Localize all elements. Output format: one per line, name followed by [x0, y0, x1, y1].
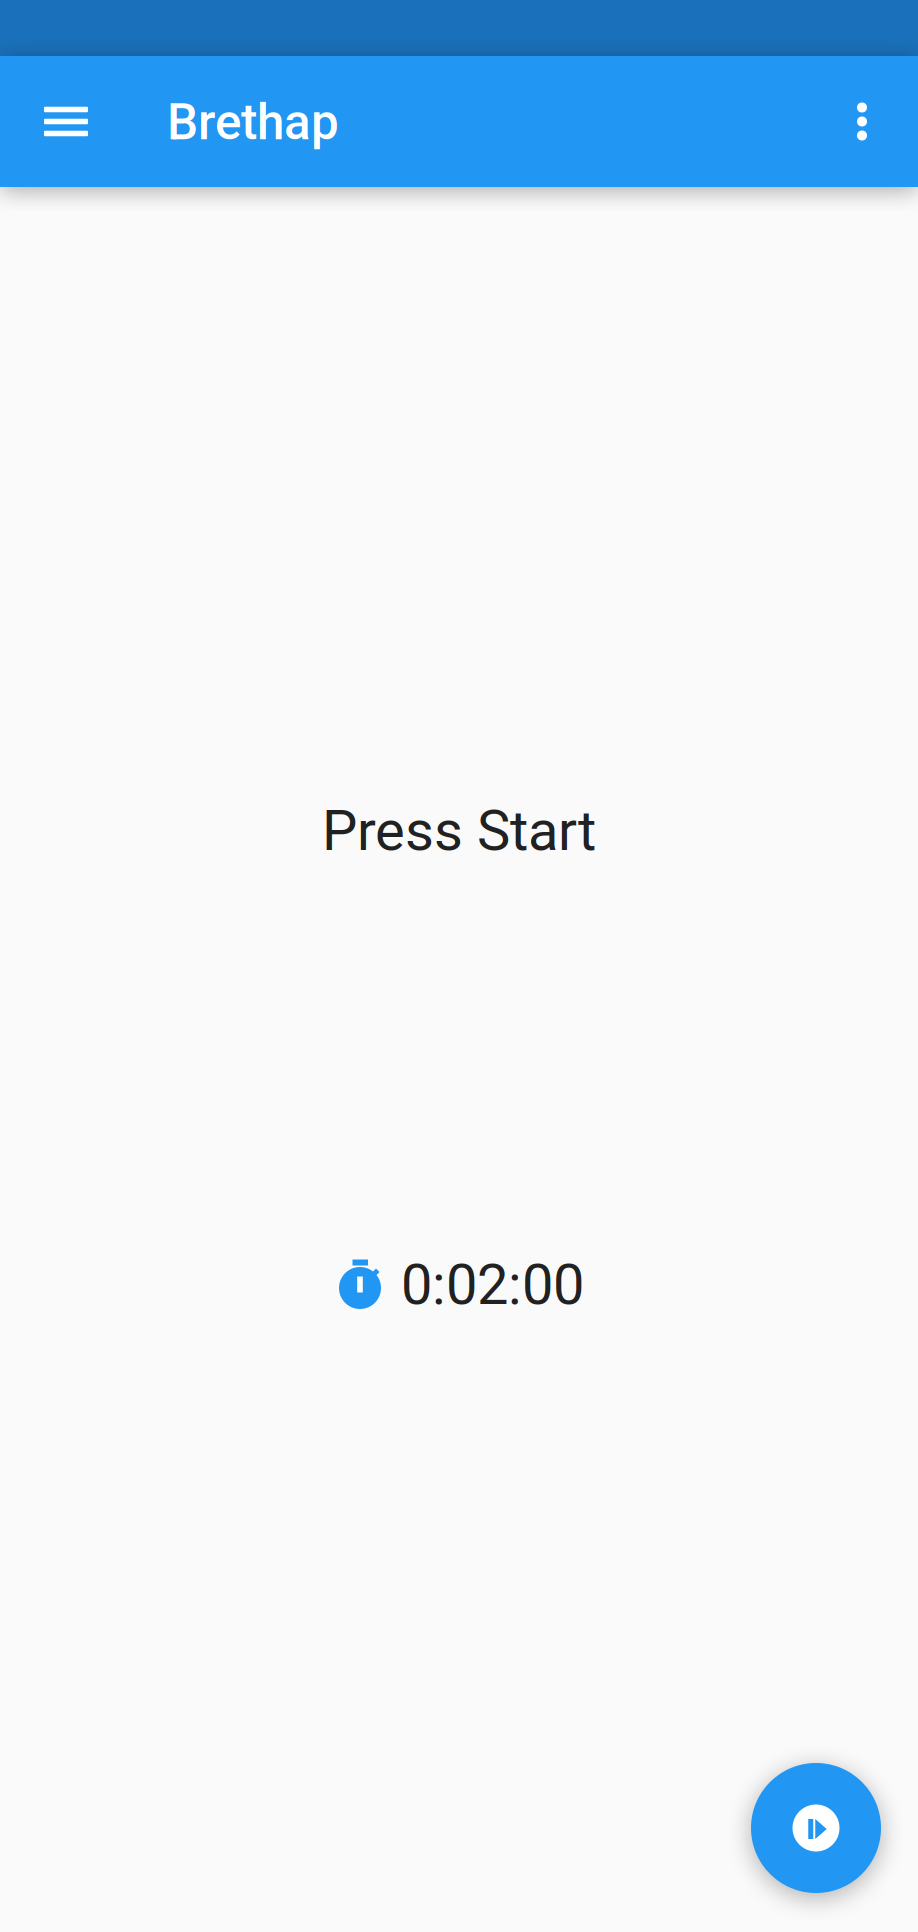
button[interactable]: More options	[818, 56, 906, 187]
button[interactable]: Open navigation menu	[22, 56, 110, 187]
staticText: Brethap	[167, 94, 339, 151]
button[interactable]: Start breathing session	[751, 1763, 881, 1893]
staticText: 0:02:00	[401, 1252, 584, 1318]
staticText: Press Start	[322, 798, 596, 864]
